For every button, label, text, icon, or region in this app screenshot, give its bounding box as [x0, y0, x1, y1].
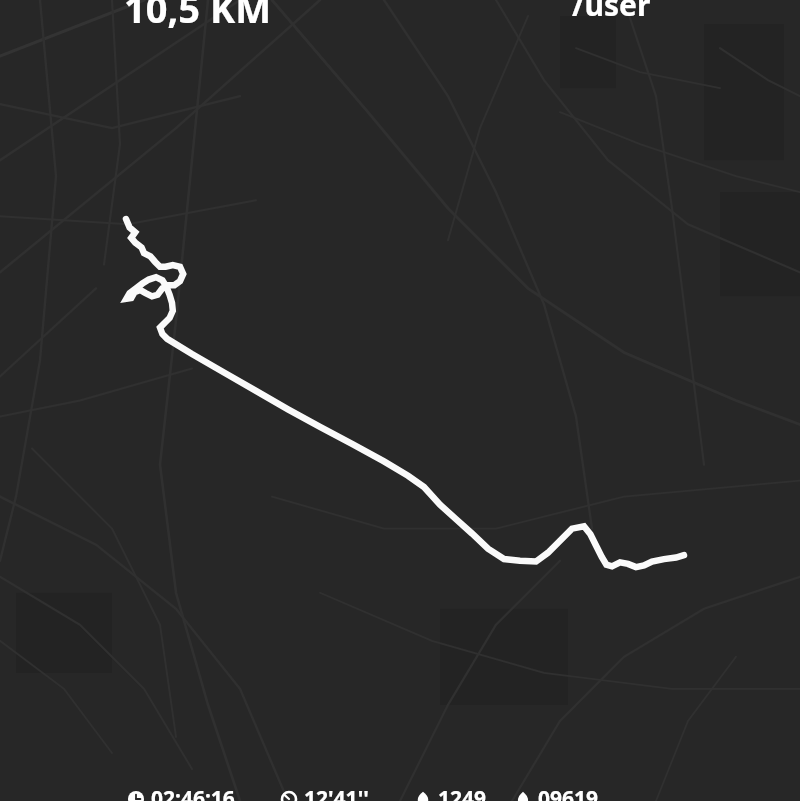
- staticText: 10,5 KM: [124, 0, 271, 34]
- staticText: 1249: [438, 784, 487, 801]
- staticText: /user: [572, 0, 651, 25]
- staticText: 09619: [538, 784, 599, 801]
- button[interactable]: Steps: [513, 784, 601, 801]
- button[interactable]: /user: [566, 0, 657, 27]
- button[interactable]: Calories: [413, 784, 489, 801]
- button[interactable]: Duration: [126, 784, 237, 801]
- staticText: 02:46:16: [151, 784, 235, 801]
- button[interactable]: Pace: [279, 784, 371, 801]
- button[interactable]: 10,5 KM: [118, 0, 277, 36]
- staticText: 12'41'': [304, 784, 369, 801]
